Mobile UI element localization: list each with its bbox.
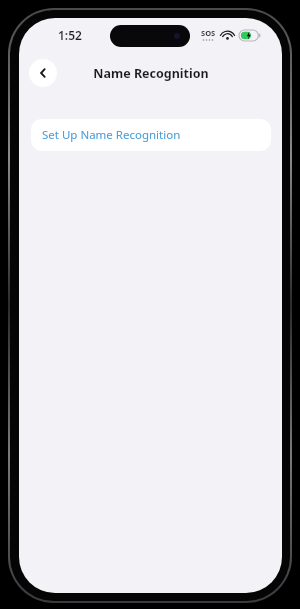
staticText: Name Recognition: [93, 65, 209, 82]
staticText: 1:52: [58, 27, 82, 43]
button[interactable]: Back: [29, 59, 57, 87]
staticText: Set Up Name Recognition: [42, 127, 181, 143]
staticText: SOS: [201, 28, 216, 38]
button[interactable]: Set Up Name Recognition: [31, 119, 271, 151]
